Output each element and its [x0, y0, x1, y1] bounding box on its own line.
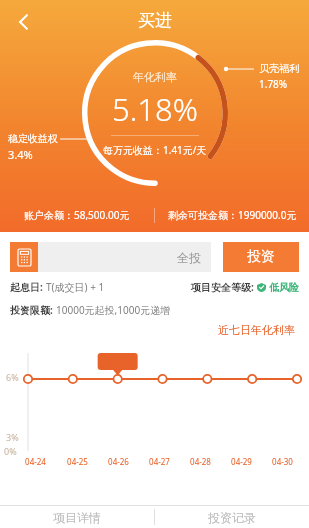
staticText: 04-28	[190, 456, 211, 467]
staticText: 项目详情	[53, 510, 101, 525]
button[interactable]: 投资记录	[155, 506, 309, 528]
staticText: 每万元收益：1.41元/天	[103, 143, 207, 157]
staticText: 04-24	[25, 456, 46, 467]
staticText: 04-30	[272, 456, 293, 467]
staticText: 稳定收益权	[8, 132, 58, 145]
staticText: 04-26	[108, 456, 129, 467]
staticText: 买进	[138, 10, 172, 31]
staticText: 全投	[177, 250, 201, 265]
staticText: 低风险	[269, 281, 299, 294]
staticText: 投资记录	[208, 510, 256, 525]
staticText: 3%	[6, 431, 19, 443]
staticText: 04-25	[67, 456, 88, 467]
button[interactable]: 投资	[223, 242, 299, 272]
other: Calculator	[10, 242, 38, 272]
staticText: 起息日:	[10, 280, 46, 294]
staticText: T(成交日) + 1	[46, 280, 105, 294]
staticText: 项目安全等级:	[191, 280, 257, 294]
button[interactable]: Calculator	[10, 242, 211, 272]
staticText: 04-29	[231, 456, 252, 467]
staticText: 剩余可投金额：1990000.0元	[168, 208, 297, 222]
staticText: 年化利率	[133, 70, 177, 84]
staticText: 5.18%	[112, 88, 198, 130]
staticText: 近七日年化利率	[218, 323, 295, 337]
staticText: 贝壳福利	[259, 62, 299, 75]
staticText: 10000元起投,1000元递增	[56, 303, 171, 317]
button[interactable]: Back	[4, 2, 44, 42]
button[interactable]: 项目详情	[0, 506, 154, 528]
staticText: 6%	[6, 371, 19, 383]
staticText: 投资	[247, 248, 275, 266]
staticText: 1.78%	[259, 77, 288, 91]
staticText: 投资限额:	[10, 303, 56, 317]
staticText: 3.4%	[8, 147, 33, 162]
staticText: 04-27	[149, 456, 170, 467]
staticText: 账户余额：58,500.00元	[24, 208, 130, 222]
staticText: 0%	[4, 445, 17, 457]
